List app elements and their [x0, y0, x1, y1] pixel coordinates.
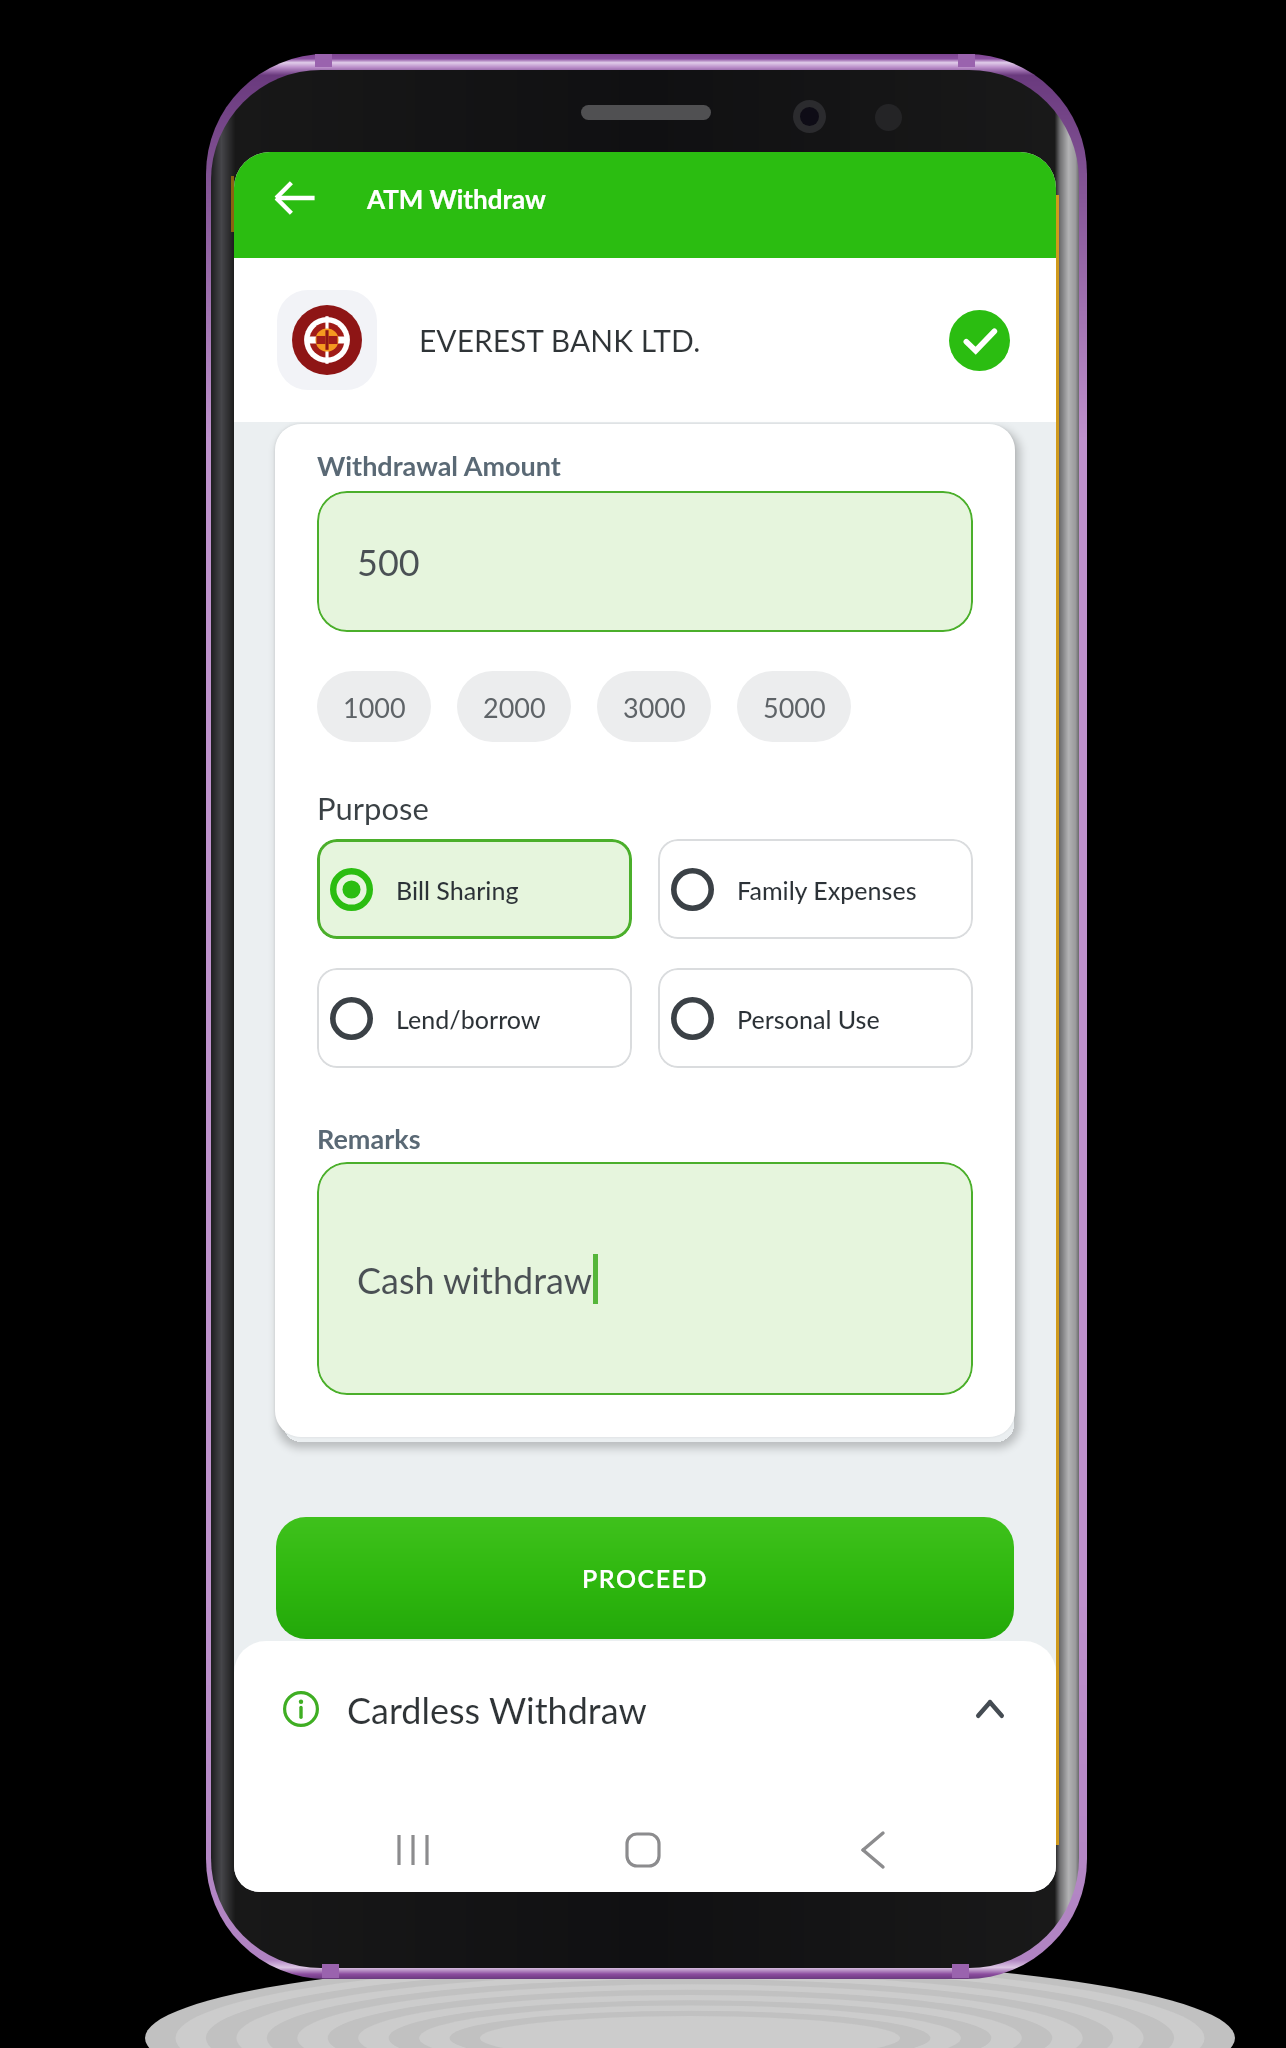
button[interactable]: PROCEED [276, 1517, 1014, 1639]
staticText: Cardless Withdraw [347, 1688, 647, 1731]
button[interactable]: 5000 [737, 671, 851, 742]
staticText: Purpose [317, 789, 429, 826]
staticText: 5000 [763, 691, 826, 723]
staticText: PROCEED [582, 1563, 708, 1593]
staticText: ATM Withdraw [367, 183, 546, 214]
button[interactable]: 1000 [317, 671, 431, 742]
staticText: Withdrawal Amount [317, 449, 561, 481]
button[interactable]: Cardless Withdraw [234, 1641, 1056, 1777]
button[interactable]: Selected bank [949, 310, 1010, 371]
staticText: EVEREST BANK LTD. [419, 322, 701, 358]
staticText: 3000 [623, 691, 686, 723]
button[interactable]: 500 [317, 491, 973, 632]
staticText: 500 [357, 540, 420, 583]
button[interactable]: 3000 [597, 671, 711, 742]
staticText: Lend/borrow [396, 1004, 541, 1034]
button[interactable]: Cash withdraw [317, 1162, 973, 1395]
button[interactable]: Recent apps [297, 1807, 528, 1892]
staticText: Cash withdraw [357, 1258, 593, 1301]
button[interactable]: Home [528, 1807, 758, 1892]
staticText: 2000 [483, 691, 546, 723]
button[interactable]: Bill Sharing [317, 839, 632, 939]
button[interactable]: Collapse [968, 1687, 1012, 1731]
button[interactable]: Lend/borrow [317, 968, 632, 1068]
staticText: 1000 [343, 691, 406, 723]
button[interactable]: Back [264, 167, 326, 229]
button[interactable]: EVEREST BANK LTD. [234, 258, 1056, 422]
staticText: Remarks [317, 1122, 421, 1154]
button[interactable]: Family Expenses [658, 839, 973, 939]
button[interactable]: Back [758, 1807, 988, 1892]
button[interactable]: 2000 [457, 671, 571, 742]
staticText: Personal Use [737, 1004, 880, 1034]
staticText: Bill Sharing [396, 875, 519, 905]
staticText: Family Expenses [737, 875, 917, 905]
button[interactable]: Personal Use [658, 968, 973, 1068]
